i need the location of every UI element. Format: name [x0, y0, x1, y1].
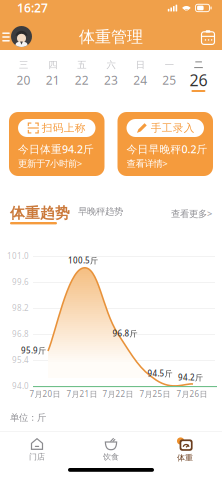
staticText: 查看更多>: [171, 207, 212, 220]
staticText: 96.8斤: [112, 328, 137, 339]
staticText: 更新于7小时前>: [18, 157, 82, 170]
staticText: 查看详情>: [126, 157, 167, 170]
staticText: 100.5斤: [68, 255, 98, 266]
button[interactable]: 扫码上称: [9, 112, 104, 176]
staticText: 16:27: [17, 0, 48, 16]
staticText: 今日早晚秤0.2斤: [126, 142, 207, 156]
button[interactable]: 体重趋势: [10, 204, 70, 224]
staticText: 94.5斤: [147, 368, 172, 379]
button[interactable]: 体重: [160, 437, 210, 463]
staticText: 20: [17, 72, 31, 88]
button[interactable]: 早晚秤趋势: [78, 206, 123, 217]
staticText: 22: [75, 72, 89, 88]
staticText: 四: [48, 59, 57, 71]
staticText: 手工录入: [151, 121, 195, 134]
staticText: 二: [194, 59, 203, 71]
staticText: 95.9斤: [21, 345, 46, 356]
staticText: 体重: [177, 453, 193, 463]
staticText: 门店: [29, 452, 45, 462]
staticText: 7月25日: [139, 389, 170, 399]
button[interactable]: 六: [96, 58, 125, 92]
staticText: 饮食: [103, 452, 119, 462]
staticText: 99.6: [12, 277, 29, 287]
staticText: 五: [77, 59, 86, 71]
staticText: 今日体重94.2斤: [18, 142, 94, 156]
staticText: 7月21日: [66, 389, 97, 399]
staticText: 98.2: [12, 303, 29, 313]
staticText: 7月20日: [29, 389, 60, 399]
button[interactable]: 查看更多>: [171, 207, 212, 220]
staticText: 24: [133, 72, 147, 88]
staticText: 26: [189, 69, 207, 91]
button[interactable]: 日: [126, 58, 155, 92]
staticText: 体重趋势: [10, 204, 70, 222]
staticText: 21: [46, 72, 60, 88]
button[interactable]: 五: [67, 58, 96, 92]
button[interactable]: 四: [38, 58, 67, 92]
staticText: 六: [106, 59, 115, 71]
button[interactable]: Calendar: [201, 29, 215, 44]
staticText: 95.4: [12, 355, 29, 365]
staticText: 日: [136, 59, 145, 71]
staticText: 25: [162, 72, 176, 88]
button[interactable]: 三: [9, 58, 38, 92]
button[interactable]: Profile: [11, 26, 32, 47]
staticText: 101.0: [7, 251, 29, 261]
button[interactable]: 饮食: [86, 438, 136, 462]
button[interactable]: 一: [155, 58, 184, 92]
staticText: 扫码上称: [42, 121, 86, 134]
staticText: 一: [165, 59, 174, 71]
staticText: 三: [19, 59, 28, 71]
staticText: 23: [104, 72, 118, 88]
staticText: 7月26日: [176, 389, 207, 399]
staticText: 94.2斤: [178, 372, 203, 383]
staticText: 单位：斤: [10, 412, 46, 423]
staticText: 体重管理: [79, 27, 143, 47]
staticText: 96.8: [12, 329, 29, 339]
button[interactable]: 二: [184, 58, 213, 92]
staticText: 94.0: [12, 381, 29, 391]
button[interactable]: Menu: [0, 28, 12, 46]
staticText: 早晚秤趋势: [78, 206, 123, 217]
button[interactable]: 门店: [12, 438, 62, 462]
staticText: 7月22日: [102, 389, 133, 399]
button[interactable]: 手工录入: [117, 112, 213, 176]
